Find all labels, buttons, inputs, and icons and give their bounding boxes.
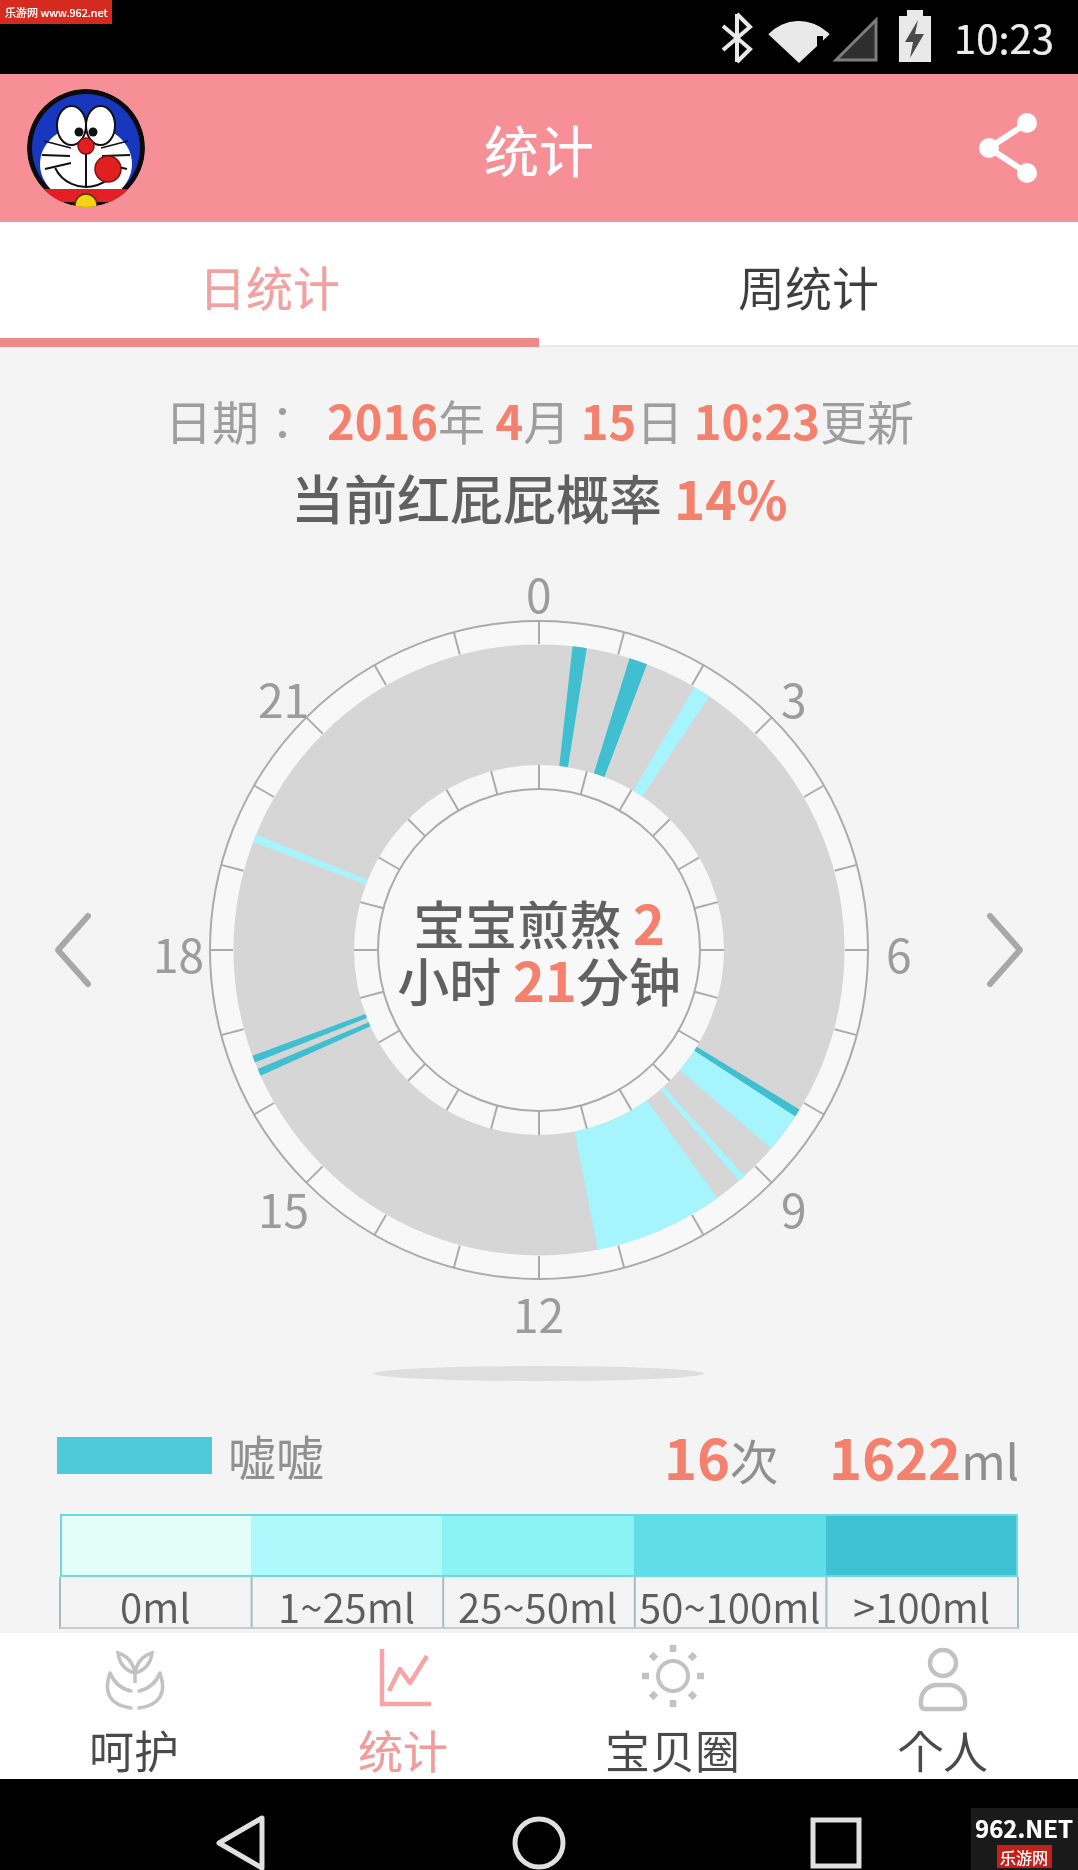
staticText: 25~50ml [458,1577,618,1629]
staticText: 统计 [358,1717,449,1779]
staticText: 21 [258,665,310,725]
staticText: 统计 [484,108,595,188]
staticText: >100ml [853,1577,991,1629]
button[interactable]: 统计 [269,1633,538,1779]
staticText: 1~25ml [278,1577,416,1629]
button[interactable]: 呵护 [0,1633,269,1779]
staticText: 嘘嘘 [228,1420,325,1490]
staticText: 16次 [664,1415,779,1495]
button[interactable]: 个人 [808,1633,1078,1779]
button[interactable] [0,1779,360,1870]
staticText: 9 [781,1175,807,1235]
staticText: 0 [526,560,552,620]
staticText: 宝贝圈 [605,1717,741,1779]
button[interactable]: 周统计 [539,222,1078,347]
button[interactable] [719,1779,1078,1870]
staticText: 3 [781,665,807,725]
button[interactable] [27,89,145,207]
button[interactable]: 日统计 [0,222,539,347]
staticText: 6 [886,920,912,980]
staticText: 周统计 [738,251,879,319]
button[interactable] [970,110,1046,186]
staticText: 0ml [120,1577,191,1629]
staticText: 乐游网 [1000,1845,1049,1868]
staticText: 50~100ml [639,1577,821,1629]
staticText: 宝宝煎熬 2 小时 21分钟 [397,882,681,1018]
button[interactable] [360,1779,719,1870]
staticText: 呵护 [89,1717,180,1779]
staticText: 962.NET [975,1810,1074,1845]
button[interactable] [35,890,115,1010]
staticText: 15 [258,1175,310,1235]
staticText: 当前红屁屁概率 14% [291,459,788,536]
staticText: 日统计 [199,251,340,319]
staticText: 个人 [898,1717,989,1779]
staticText: 乐游网 www.962.net [5,4,108,20]
staticText: 10:23 [954,8,1054,66]
staticText: 日期： 2016年 4月 15日 10:23更新 [165,385,914,453]
staticText: 12 [513,1280,565,1340]
staticText: 18 [153,920,205,980]
staticText: 1622ml [829,1415,1020,1495]
button[interactable]: 宝贝圈 [538,1633,808,1779]
button[interactable] [963,890,1043,1010]
